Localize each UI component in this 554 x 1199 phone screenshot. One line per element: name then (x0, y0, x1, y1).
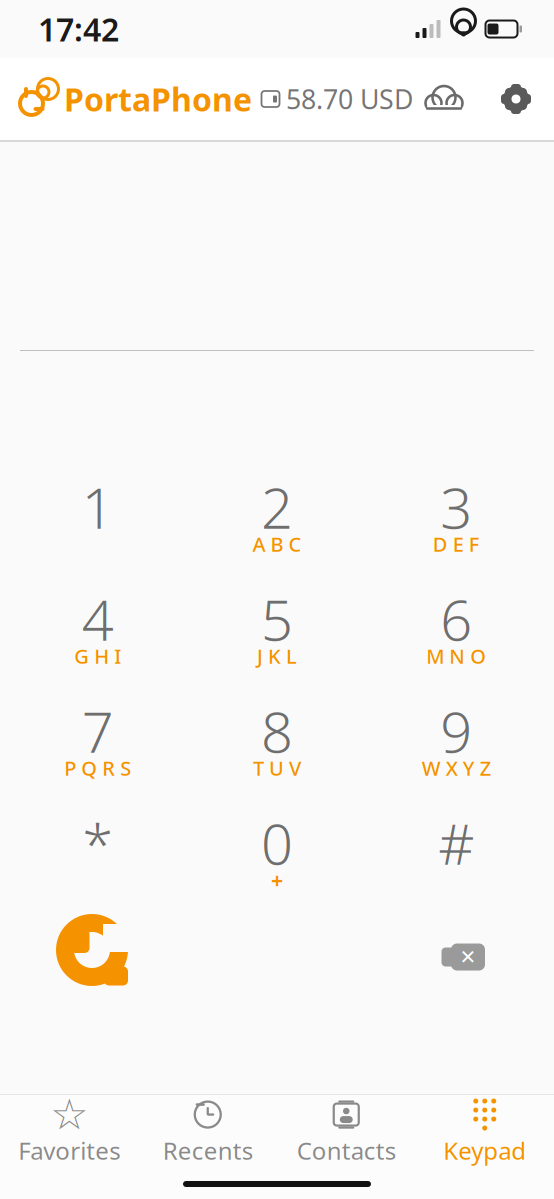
staticText: 5 (261, 582, 293, 656)
staticText: W X Y Z (422, 755, 491, 781)
staticText: Contacts (297, 1135, 396, 1166)
staticText: * (82, 806, 113, 880)
staticText: Recents (163, 1135, 253, 1166)
staticText: 6 (440, 582, 472, 656)
staticText: 8 (261, 694, 293, 768)
button[interactable]: 1 (8, 463, 187, 573)
staticText: 9 (440, 694, 472, 768)
button[interactable]: * (8, 799, 187, 909)
button[interactable]: 0 (187, 799, 367, 909)
staticText: 3 (440, 470, 472, 544)
staticText: Keypad (443, 1135, 526, 1166)
staticText: J K L (257, 643, 297, 669)
button[interactable]: PortaPhone (18, 78, 252, 120)
button[interactable]: Delete (372, 909, 554, 1005)
staticText: 0 (261, 806, 293, 880)
staticText: T U V (253, 755, 301, 781)
staticText: 17:42 (38, 8, 119, 50)
button[interactable]: 5 (187, 575, 367, 685)
button[interactable]: Recents (138, 1098, 277, 1166)
button[interactable]: 6 (367, 575, 546, 685)
staticText: 7 (82, 694, 114, 768)
staticText: Favorites (18, 1135, 120, 1166)
button[interactable]: 3 (367, 463, 546, 573)
staticText: P Q R S (64, 755, 131, 781)
button[interactable]: 9 (367, 687, 546, 797)
staticText: 58.70 USD (286, 81, 413, 117)
staticText: # (438, 806, 474, 880)
button[interactable]: Call (8, 909, 190, 1005)
staticText: ✕ (459, 946, 476, 968)
staticText: 1 (82, 470, 114, 544)
staticText: ☆ (50, 1090, 88, 1139)
staticText: M N O (426, 643, 486, 669)
button[interactable]: Keypad (415, 1098, 554, 1166)
button[interactable]: Contacts (277, 1098, 415, 1166)
button[interactable]: Cloud sync (422, 84, 466, 114)
staticText: 2 (261, 470, 293, 544)
button[interactable]: ☆ (0, 1098, 138, 1166)
button[interactable]: # (367, 799, 546, 909)
staticText: 4 (82, 582, 114, 656)
button[interactable]: 2 (187, 463, 367, 573)
staticText: PortaPhone (64, 78, 252, 120)
button[interactable]: 58.70 USD (261, 81, 413, 117)
button[interactable]: 7 (8, 687, 187, 797)
button[interactable]: Settings (500, 83, 532, 115)
staticText: A B C (252, 531, 301, 557)
button[interactable]: 8 (187, 687, 367, 797)
staticText: G H I (74, 643, 121, 669)
button[interactable]: 4 (8, 575, 187, 685)
staticText: + (271, 866, 283, 894)
staticText: D E F (433, 531, 480, 557)
